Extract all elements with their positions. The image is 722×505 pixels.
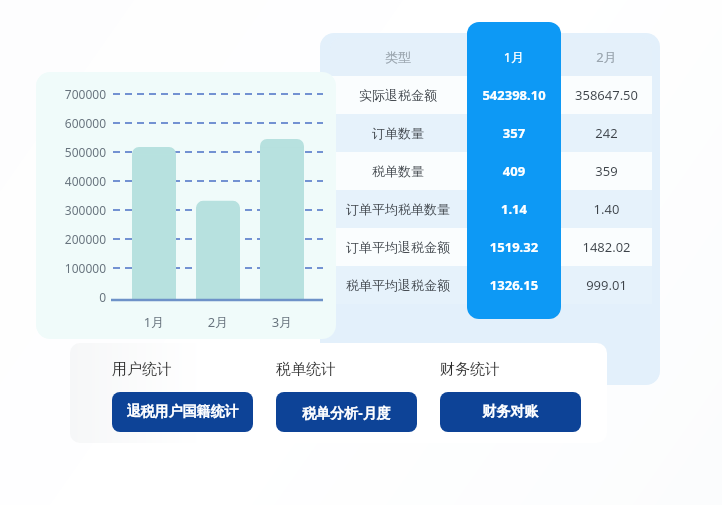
staticText: 409 — [467, 162, 561, 180]
button[interactable]: 订单数量 — [330, 114, 652, 152]
button[interactable]: 税单数量 — [330, 152, 652, 190]
staticText: 400000 — [40, 173, 106, 189]
staticText: 700000 — [40, 86, 106, 102]
button[interactable]: 1月 — [467, 22, 561, 319]
staticText: 200000 — [40, 231, 106, 247]
button[interactable]: 税单分析-月度 — [276, 392, 417, 432]
staticText: 500000 — [40, 144, 106, 160]
staticText: 542398.10 — [467, 86, 561, 104]
staticText: 600000 — [40, 115, 106, 131]
staticText: 1519.32 — [467, 238, 561, 256]
button[interactable]: 实际退税金额 — [330, 76, 652, 114]
staticText: 财务统计 — [440, 360, 600, 379]
staticText: 359 — [561, 162, 652, 180]
staticText: 2月 — [561, 48, 652, 66]
staticText: 订单平均税单数量 — [330, 201, 466, 217]
staticText: 财务对账 — [440, 403, 581, 421]
staticText: 订单数量 — [330, 125, 466, 141]
staticText: 358647.50 — [561, 86, 652, 104]
staticText: 242 — [561, 124, 652, 142]
staticText: 300000 — [40, 202, 106, 218]
staticText: 100000 — [40, 260, 106, 276]
button[interactable]: 订单平均税单数量 — [330, 190, 652, 228]
staticText: 税单平均退税金额 — [330, 277, 466, 293]
button[interactable]: 财务对账 — [440, 392, 581, 432]
staticText: 1326.15 — [467, 276, 561, 294]
staticText: 357 — [467, 124, 561, 142]
staticText: 实际退税金额 — [330, 87, 466, 103]
staticText: 0 — [40, 289, 106, 305]
staticText: 1482.02 — [561, 238, 652, 256]
staticText: 999.01 — [561, 276, 652, 294]
button[interactable]: 退税用户国籍统计 — [112, 392, 253, 432]
staticText: 税单统计 — [276, 360, 436, 379]
staticText: 税单分析-月度 — [276, 403, 417, 422]
staticText: 类型 — [330, 49, 466, 65]
staticText: 税单数量 — [330, 163, 466, 179]
button[interactable]: 订单平均退税金额 — [330, 228, 652, 266]
staticText: 1.14 — [467, 200, 561, 218]
staticText: 1月 — [467, 48, 561, 66]
staticText: 1月 — [122, 313, 186, 331]
staticText: 1.40 — [561, 200, 652, 218]
button[interactable]: 税单平均退税金额 — [330, 266, 652, 304]
staticText: 3月 — [250, 313, 314, 331]
staticText: 2月 — [186, 313, 250, 331]
staticText: 订单平均退税金额 — [330, 239, 466, 255]
staticText: 退税用户国籍统计 — [112, 403, 253, 421]
staticText: 用户统计 — [112, 360, 272, 379]
